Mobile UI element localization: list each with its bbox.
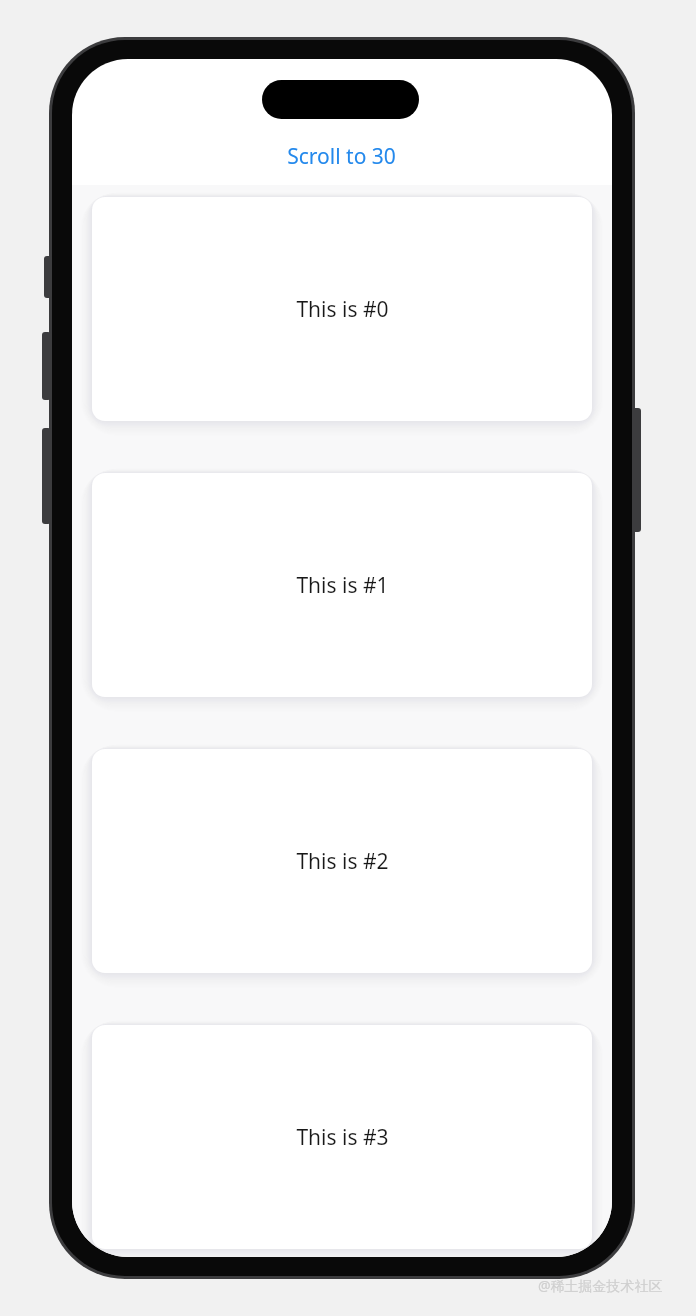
staticText: This is #1 [296, 571, 389, 600]
staticText: This is #2 [296, 847, 389, 876]
button[interactable]: Power [632, 408, 641, 532]
staticText: This is #3 [296, 1123, 389, 1152]
staticText: Scroll to 30 [287, 142, 396, 171]
button[interactable]: This is #3 [92, 1025, 592, 1249]
button[interactable]: Volume down [42, 428, 51, 524]
button[interactable]: This is #2 [92, 749, 592, 973]
staticText: @稀土掘金技术社区 [538, 1276, 663, 1295]
button[interactable]: This is #0 [92, 197, 592, 421]
button[interactable]: Scroll to 30 [252, 135, 430, 177]
staticText: This is #0 [296, 295, 389, 324]
button[interactable]: This is #1 [92, 473, 592, 697]
button[interactable]: Volume up [42, 332, 51, 400]
button[interactable]: Mute switch [44, 256, 52, 298]
